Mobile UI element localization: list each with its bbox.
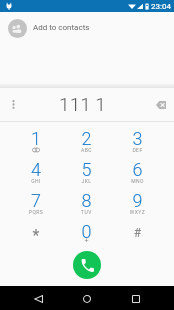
button[interactable]: 8 (61, 183, 112, 214)
staticText: 6 (112, 159, 163, 180)
staticText: 5 (61, 159, 112, 180)
button[interactable]: # (112, 214, 163, 245)
button[interactable]: Add to contacts (0, 12, 174, 45)
staticText: GHI (11, 178, 61, 184)
staticText: * (11, 226, 61, 245)
staticText: 1 (11, 128, 61, 149)
staticText: + (61, 237, 112, 245)
staticText: PQRS (11, 209, 61, 215)
button[interactable]: 0 (61, 214, 112, 245)
button[interactable]: 9 (112, 183, 163, 214)
button[interactable]: 2 (61, 121, 112, 152)
staticText: Add to contacts (33, 23, 90, 32)
button[interactable]: 7 (11, 183, 61, 214)
staticText: JKL (61, 178, 112, 184)
staticText: 3 (112, 128, 163, 149)
staticText: 2 (61, 128, 112, 149)
staticText: 0 (61, 221, 112, 242)
staticText: # (112, 226, 163, 240)
staticText: TUV (61, 209, 112, 215)
button[interactable]: More options (3, 88, 23, 121)
staticText: 4 (11, 159, 61, 180)
button[interactable]: Backspace (148, 88, 174, 121)
staticText: 7 (11, 190, 61, 211)
staticText: 23:04 (151, 2, 171, 11)
button[interactable]: 5 (61, 152, 112, 183)
staticText: 8 (61, 190, 112, 211)
staticText: 111 1 (59, 93, 106, 115)
staticText: DEF (112, 147, 163, 153)
button[interactable]: 3 (112, 121, 163, 152)
staticText: 9 (112, 190, 163, 211)
button[interactable]: 4 (11, 152, 61, 183)
button[interactable]: 6 (112, 152, 163, 183)
button[interactable]: Recents (120, 286, 151, 310)
staticText: WXYZ (112, 209, 163, 215)
button[interactable]: Call (73, 251, 101, 279)
button[interactable]: * (11, 214, 61, 245)
button[interactable]: Home (71, 286, 102, 310)
button[interactable]: Back (23, 286, 54, 310)
button[interactable]: 1 (11, 121, 61, 152)
staticText: MNO (112, 178, 163, 184)
staticText: ABC (61, 147, 112, 153)
